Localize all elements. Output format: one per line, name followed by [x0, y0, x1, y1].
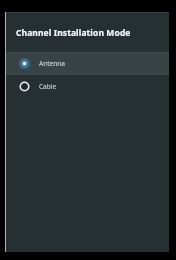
button[interactable]: Antenna	[6, 52, 169, 75]
other: Antenna	[17, 56, 32, 71]
staticText: Antenna	[39, 59, 65, 68]
staticText: Channel Installation Mode	[16, 27, 131, 39]
other: Cable	[17, 79, 32, 94]
staticText: Cable	[39, 82, 57, 91]
button[interactable]: Cable	[6, 75, 169, 98]
